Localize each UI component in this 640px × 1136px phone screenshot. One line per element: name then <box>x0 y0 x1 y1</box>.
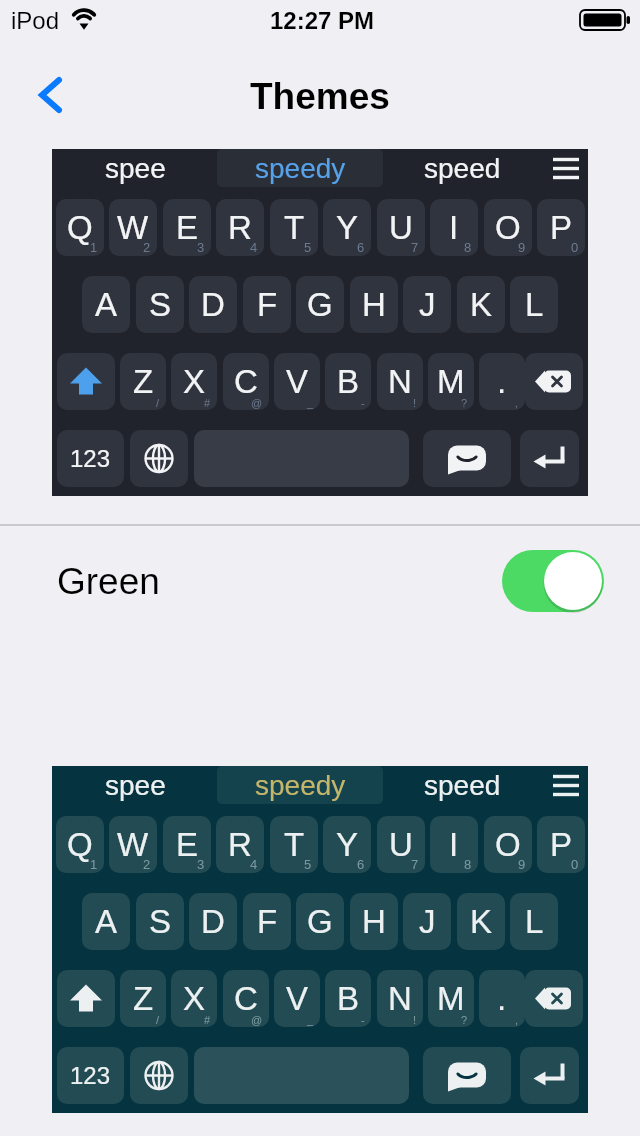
button[interactable]: H <box>350 893 398 950</box>
staticText: X <box>183 980 206 1017</box>
button[interactable]: A <box>82 276 130 333</box>
button[interactable]: . <box>479 353 525 410</box>
button[interactable]: J <box>403 893 451 950</box>
button[interactable]: G <box>296 893 344 950</box>
button[interactable]: K <box>457 893 505 950</box>
button[interactable] <box>546 768 586 802</box>
button[interactable]: D <box>189 893 237 950</box>
staticText: 9 <box>518 857 526 872</box>
button[interactable]: I <box>430 199 478 256</box>
staticText: N <box>388 363 412 400</box>
button[interactable]: Z <box>120 970 166 1027</box>
button[interactable]: U <box>377 199 425 256</box>
button[interactable]: P <box>537 199 585 256</box>
staticText: W <box>117 826 149 863</box>
button[interactable]: R <box>216 199 264 256</box>
button[interactable]: Q <box>56 199 104 256</box>
button[interactable]: Z <box>120 353 166 410</box>
button[interactable] <box>498 546 608 616</box>
staticText: ? <box>461 397 468 409</box>
staticText: Q <box>67 826 93 863</box>
button[interactable]: 123 <box>57 1047 124 1104</box>
button[interactable]: 123 <box>57 430 124 487</box>
staticText: P <box>550 826 573 863</box>
button[interactable] <box>130 430 188 487</box>
staticText: # <box>204 397 211 409</box>
button[interactable]: K <box>457 276 505 333</box>
staticText: 12:27 PM <box>270 7 375 34</box>
button[interactable]: Green <box>0 526 640 636</box>
button[interactable]: X <box>171 970 217 1027</box>
button[interactable]: H <box>350 276 398 333</box>
button[interactable]: W <box>109 816 157 873</box>
button[interactable]: E <box>163 199 211 256</box>
staticText: U <box>389 209 413 246</box>
staticText: Z <box>133 980 154 1017</box>
button[interactable] <box>30 70 80 120</box>
button[interactable] <box>546 151 586 185</box>
button[interactable]: D <box>189 276 237 333</box>
button[interactable]: S <box>136 276 184 333</box>
button[interactable] <box>520 1047 579 1104</box>
button[interactable] <box>194 1047 409 1104</box>
button[interactable]: U <box>377 816 425 873</box>
staticText: D <box>201 286 225 323</box>
button[interactable]: G <box>296 276 344 333</box>
button[interactable]: A <box>82 893 130 950</box>
button[interactable]: V <box>274 970 320 1027</box>
button[interactable]: C <box>223 970 269 1027</box>
button[interactable]: R <box>216 816 264 873</box>
button[interactable]: Q <box>56 816 104 873</box>
button[interactable]: F <box>243 893 291 950</box>
button[interactable]: I <box>430 816 478 873</box>
button[interactable] <box>57 970 115 1027</box>
staticText: L <box>525 903 544 940</box>
staticText: 9 <box>518 240 526 255</box>
button[interactable]: O <box>484 199 532 256</box>
button[interactable]: M <box>428 970 474 1027</box>
button[interactable]: P <box>537 816 585 873</box>
button[interactable]: B <box>325 353 371 410</box>
button[interactable]: L <box>510 893 558 950</box>
staticText: C <box>234 363 258 400</box>
button[interactable]: N <box>377 353 423 410</box>
button[interactable]: X <box>171 353 217 410</box>
button[interactable] <box>423 1047 511 1104</box>
staticText: 123 <box>70 445 111 472</box>
staticText: 7 <box>411 857 419 872</box>
button[interactable] <box>525 970 583 1027</box>
button[interactable]: F <box>243 276 291 333</box>
button[interactable] <box>423 430 511 487</box>
button[interactable] <box>57 353 115 410</box>
button[interactable]: B <box>325 970 371 1027</box>
staticText: . <box>497 363 507 400</box>
button[interactable]: V <box>274 353 320 410</box>
button[interactable]: J <box>403 276 451 333</box>
button[interactable]: Y <box>323 199 371 256</box>
button[interactable]: L <box>510 276 558 333</box>
staticText: Y <box>336 209 359 246</box>
button[interactable] <box>217 766 383 804</box>
staticText: E <box>176 826 199 863</box>
button[interactable]: T <box>270 816 318 873</box>
staticText: 6 <box>357 240 365 255</box>
button[interactable] <box>130 1047 188 1104</box>
button[interactable]: O <box>484 816 532 873</box>
button[interactable]: C <box>223 353 269 410</box>
staticText: , <box>515 397 519 409</box>
staticText: , <box>515 1014 519 1026</box>
button[interactable]: E <box>163 816 211 873</box>
button[interactable]: T <box>270 199 318 256</box>
button[interactable]: M <box>428 353 474 410</box>
staticText: spee <box>105 770 166 801</box>
button[interactable]: . <box>479 970 525 1027</box>
button[interactable] <box>217 149 383 187</box>
button[interactable] <box>520 430 579 487</box>
button[interactable]: N <box>377 970 423 1027</box>
button[interactable]: S <box>136 893 184 950</box>
button[interactable] <box>525 353 583 410</box>
button[interactable]: Y <box>323 816 371 873</box>
button[interactable]: W <box>109 199 157 256</box>
staticText: speed <box>424 770 501 801</box>
